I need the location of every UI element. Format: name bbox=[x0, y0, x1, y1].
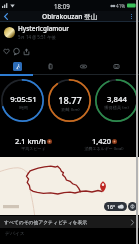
button[interactable]: 16° bbox=[107, 202, 125, 211]
staticText: Hystericglamour bbox=[18, 24, 69, 33]
staticText: 9:05:51 bbox=[10, 94, 37, 105]
staticText: 18.77 bbox=[58, 94, 82, 107]
button[interactable]: Share bbox=[21, 45, 31, 57]
button[interactable]: Tab 3 bbox=[67, 58, 100, 74]
staticText: 時間 bbox=[19, 105, 28, 110]
staticText: 2.1 km/h bbox=[15, 136, 46, 146]
staticText: すべてのその他アクティビティを表示 bbox=[4, 219, 88, 225]
button[interactable]: Back bbox=[0, 11, 12, 21]
staticText: 41% bbox=[116, 3, 126, 9]
staticText: Obirakouzan 登山 bbox=[42, 12, 98, 21]
button[interactable]: Comment bbox=[11, 45, 21, 57]
button[interactable]: 16° bbox=[0, 157, 139, 215]
button[interactable]: すべてのその他アクティビティを表示 bbox=[4, 216, 134, 228]
button[interactable]: Map layers bbox=[128, 202, 137, 211]
staticText: 距離 (km) bbox=[61, 107, 80, 113]
button[interactable]: Hystericglamour bbox=[4, 22, 139, 42]
button[interactable]: Tab 1 bbox=[0, 58, 34, 74]
staticText: 5月 14 @ 5:51 午後 bbox=[18, 34, 56, 40]
staticText: 平均スピード bbox=[21, 146, 46, 151]
staticText: 1,420 bbox=[92, 136, 111, 146]
staticText: デバイス bbox=[5, 230, 25, 236]
staticText: 3,844 bbox=[107, 94, 127, 105]
staticText: 獲得標高 (m) bbox=[104, 105, 129, 111]
button[interactable]: Like bbox=[1, 45, 11, 57]
button[interactable]: Tab 2 bbox=[34, 58, 67, 74]
button[interactable]: More options bbox=[126, 11, 136, 21]
staticText: 消費エネルギー (kcal) bbox=[84, 146, 124, 151]
staticText: 18:09 bbox=[54, 2, 70, 10]
staticText: 16° bbox=[107, 203, 116, 210]
button[interactable]: Tab 4 bbox=[100, 58, 133, 74]
